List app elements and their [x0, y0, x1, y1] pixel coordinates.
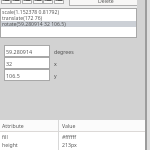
staticText: translate(172 76) [2, 15, 43, 21]
staticText: height [2, 141, 62, 148]
button[interactable]: rotate(59.280914 32 106.5) [0, 21, 137, 27]
button[interactable]: fill [0, 132, 146, 140]
staticText: 106.5 [6, 72, 20, 79]
staticText: Attribute [2, 122, 62, 129]
staticText: y [54, 72, 57, 79]
button[interactable]: tool3 [33, 0, 43, 4]
staticText: Delete [98, 0, 114, 4]
staticText: scale(1.152378 0.81792) [2, 9, 59, 15]
button[interactable]: height [0, 140, 146, 148]
staticText: 213px [62, 141, 77, 148]
button[interactable]: tool4 [43, 0, 53, 4]
button[interactable]: tool0 [1, 0, 11, 4]
button[interactable]: tool1 [11, 0, 21, 4]
staticText: 59.280914 [6, 48, 33, 55]
button[interactable]: Delete [69, 0, 142, 6]
button[interactable]: 59.280914 [4, 45, 50, 57]
staticText: Value [62, 122, 76, 129]
button[interactable]: 106.5 [4, 69, 50, 81]
button[interactable]: translate(172 76) [0, 15, 137, 21]
button[interactable]: scale(1.152378 0.81792) [0, 9, 137, 15]
button[interactable]: tool5 [54, 0, 64, 4]
staticText: 32 [6, 60, 13, 67]
staticText: rotate(59.280914 32 106.5) [2, 21, 66, 27]
staticText: degrees [54, 48, 74, 55]
button[interactable]: 32 [4, 57, 50, 69]
staticText: #ffffff [62, 133, 77, 140]
staticText: fill [2, 133, 62, 140]
button[interactable]: tool2 [22, 0, 32, 4]
staticText: x [54, 60, 57, 67]
